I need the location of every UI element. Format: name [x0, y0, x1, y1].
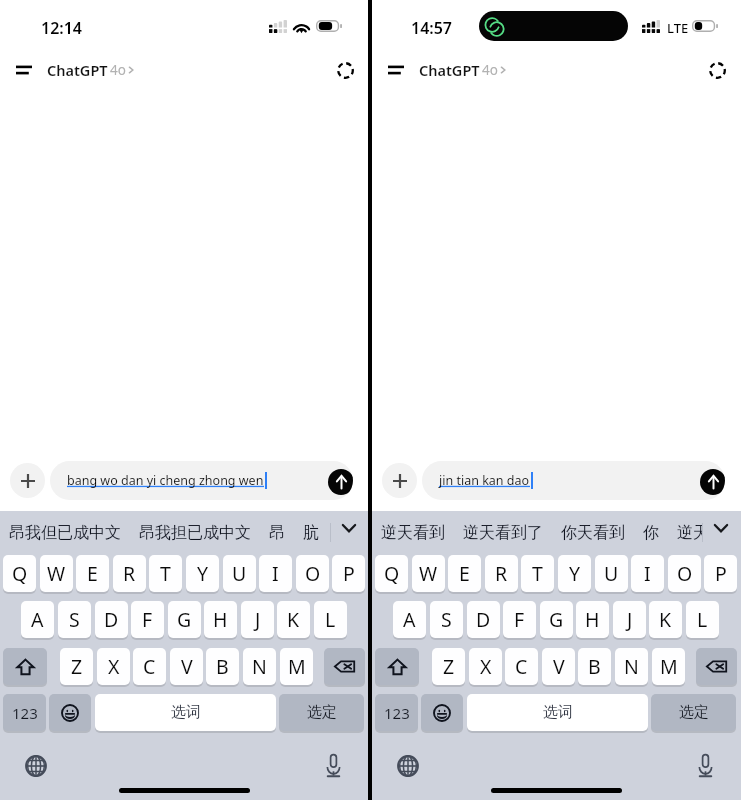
- staticText: B: [588, 653, 601, 680]
- button[interactable]: C: [505, 648, 538, 685]
- button[interactable]: H: [576, 601, 609, 638]
- button[interactable]: Voice input: [690, 751, 720, 781]
- button[interactable]: S: [430, 601, 463, 638]
- button[interactable]: Backspace: [324, 648, 365, 685]
- button[interactable]: Y: [186, 555, 219, 592]
- button[interactable]: Menu: [8, 54, 40, 86]
- button[interactable]: E: [76, 555, 109, 592]
- staticText: P: [343, 560, 355, 587]
- button[interactable]: Switch language: [393, 751, 423, 781]
- button[interactable]: 昂我担已成中文: [139, 523, 251, 543]
- button[interactable]: Send: [700, 469, 725, 495]
- button[interactable]: Temporary chat: [701, 54, 733, 86]
- staticText: Q: [384, 560, 400, 587]
- button[interactable]: P: [704, 555, 737, 592]
- button[interactable]: U: [595, 555, 628, 592]
- button[interactable]: Add attachment: [10, 463, 45, 498]
- button[interactable]: O: [296, 555, 329, 592]
- button[interactable]: W: [412, 555, 445, 592]
- button[interactable]: 选词: [95, 694, 276, 731]
- button[interactable]: P: [332, 555, 365, 592]
- button[interactable]: Switch language: [21, 751, 51, 781]
- button[interactable]: Expand suggestions: [708, 515, 734, 541]
- button[interactable]: Voice input: [318, 751, 348, 781]
- button[interactable]: 选词: [467, 694, 648, 731]
- button[interactable]: L: [314, 601, 347, 638]
- button[interactable]: N: [243, 648, 276, 685]
- button[interactable]: 选定: [651, 694, 736, 731]
- button[interactable]: 123: [3, 694, 46, 731]
- button[interactable]: E: [448, 555, 481, 592]
- button[interactable]: S: [58, 601, 91, 638]
- button[interactable]: 你天看到: [561, 523, 625, 543]
- button[interactable]: R: [113, 555, 146, 592]
- button[interactable]: Backspace: [696, 648, 737, 685]
- button[interactable]: Q: [375, 555, 408, 592]
- button[interactable]: Send: [328, 469, 353, 495]
- button[interactable]: B: [578, 648, 611, 685]
- button[interactable]: 肮: [303, 523, 319, 543]
- button[interactable]: ChatGPT: [419, 60, 508, 80]
- staticText: H: [213, 606, 228, 633]
- button[interactable]: Y: [558, 555, 591, 592]
- button[interactable]: T: [149, 555, 182, 592]
- button[interactable]: Emoji: [49, 694, 91, 731]
- button[interactable]: K: [649, 601, 682, 638]
- button[interactable]: Temporary chat: [329, 54, 361, 86]
- button[interactable]: G: [168, 601, 201, 638]
- button[interactable]: 123: [375, 694, 418, 731]
- button[interactable]: D: [95, 601, 128, 638]
- button[interactable]: bang wo dan yi cheng zhong wen: [50, 461, 353, 500]
- button[interactable]: M: [280, 648, 313, 685]
- button[interactable]: 逆天: [677, 523, 702, 543]
- button[interactable]: V: [542, 648, 575, 685]
- button[interactable]: Shift: [3, 648, 47, 685]
- button[interactable]: J: [241, 601, 274, 638]
- button[interactable]: U: [223, 555, 256, 592]
- button[interactable]: H: [204, 601, 237, 638]
- button[interactable]: 你: [643, 523, 659, 543]
- button[interactable]: G: [540, 601, 573, 638]
- button[interactable]: jin tian kan dao: [422, 461, 725, 500]
- button[interactable]: Expand suggestions: [336, 515, 362, 541]
- button[interactable]: V: [170, 648, 203, 685]
- button[interactable]: 逆天看到: [381, 523, 445, 543]
- button[interactable]: Q: [3, 555, 36, 592]
- staticText: 你天看到: [561, 523, 625, 543]
- button[interactable]: O: [668, 555, 701, 592]
- button[interactable]: J: [613, 601, 646, 638]
- button[interactable]: 逆天看到了: [463, 523, 543, 543]
- staticText: X: [108, 653, 120, 680]
- button[interactable]: X: [97, 648, 130, 685]
- button[interactable]: 选定: [279, 694, 364, 731]
- button[interactable]: Menu: [380, 54, 412, 86]
- button[interactable]: I: [259, 555, 292, 592]
- staticText: 4o: [110, 61, 126, 79]
- button[interactable]: A: [393, 601, 426, 638]
- button[interactable]: L: [686, 601, 719, 638]
- button[interactable]: Add attachment: [382, 463, 417, 498]
- button[interactable]: T: [521, 555, 554, 592]
- button[interactable]: W: [40, 555, 73, 592]
- button[interactable]: Emoji: [421, 694, 463, 731]
- button[interactable]: D: [467, 601, 500, 638]
- button[interactable]: B: [206, 648, 239, 685]
- button[interactable]: 昂我但已成中文: [9, 523, 121, 543]
- button[interactable]: F: [503, 601, 536, 638]
- button[interactable]: I: [631, 555, 664, 592]
- button[interactable]: N: [615, 648, 648, 685]
- button[interactable]: K: [277, 601, 310, 638]
- button[interactable]: Z: [60, 648, 93, 685]
- button[interactable]: ChatGPT: [47, 60, 136, 80]
- button[interactable]: C: [133, 648, 166, 685]
- button[interactable]: Shift: [375, 648, 419, 685]
- button[interactable]: 昂: [269, 523, 285, 543]
- button[interactable]: M: [652, 648, 685, 685]
- staticText: 选词: [543, 703, 573, 722]
- staticText: U: [232, 560, 247, 587]
- button[interactable]: A: [21, 601, 54, 638]
- button[interactable]: R: [485, 555, 518, 592]
- button[interactable]: X: [469, 648, 502, 685]
- button[interactable]: F: [131, 601, 164, 638]
- button[interactable]: Z: [432, 648, 465, 685]
